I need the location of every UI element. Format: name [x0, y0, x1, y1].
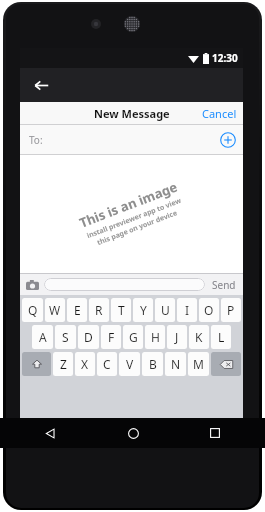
staticText: C: [103, 356, 111, 372]
button[interactable]: Z: [53, 352, 73, 376]
button[interactable]: K: [189, 325, 209, 349]
staticText: S: [62, 329, 69, 345]
button[interactable]: S: [55, 325, 76, 349]
staticText: V: [126, 356, 134, 372]
button[interactable]: Back: [28, 72, 54, 98]
staticText: I: [185, 302, 190, 318]
button[interactable]: Camera: [25, 277, 40, 292]
button[interactable]: Back: [38, 421, 62, 445]
button[interactable]: N: [165, 352, 186, 376]
button[interactable]: Backspace: [211, 352, 241, 376]
button[interactable]: O: [199, 298, 219, 322]
staticText: D: [84, 329, 93, 345]
staticText: M: [193, 356, 204, 372]
staticText: T: [118, 302, 125, 318]
button[interactable]: C: [97, 352, 117, 376]
staticText: G: [129, 329, 138, 345]
button[interactable]: G: [123, 325, 143, 349]
staticText: Send: [212, 278, 236, 292]
staticText: To:: [29, 133, 43, 147]
button[interactable]: R: [89, 298, 109, 322]
staticText: this page on your device: [95, 208, 179, 248]
staticText: L: [218, 329, 225, 345]
staticText: Q: [28, 302, 38, 318]
staticText: O: [204, 302, 214, 318]
button[interactable]: P: [221, 298, 241, 322]
button[interactable]: Shift: [22, 352, 51, 376]
button[interactable]: To:: [20, 125, 243, 154]
button[interactable]: D: [78, 325, 99, 349]
staticText: R: [95, 302, 103, 318]
button[interactable]: B: [142, 352, 163, 376]
staticText: B: [149, 356, 157, 372]
staticText: U: [161, 302, 170, 318]
staticText: A: [39, 329, 47, 345]
button[interactable]: Cancel: [196, 103, 243, 124]
button[interactable]: Q: [22, 298, 43, 322]
staticText: E: [74, 302, 81, 318]
button[interactable]: J: [167, 325, 187, 349]
staticText: F: [108, 329, 115, 345]
button[interactable]: L: [211, 325, 231, 349]
button[interactable]: H: [145, 325, 165, 349]
staticText: This is an image: [76, 178, 180, 232]
button[interactable]: W: [45, 298, 65, 322]
staticText: P: [227, 302, 235, 318]
staticText: K: [195, 329, 203, 345]
staticText: Cancel: [202, 106, 237, 121]
button[interactable]: M: [188, 352, 209, 376]
button[interactable]: X: [75, 352, 95, 376]
button[interactable]: V: [119, 352, 140, 376]
staticText: Y: [140, 302, 147, 318]
button[interactable]: [44, 278, 205, 291]
button[interactable]: E: [67, 298, 87, 322]
staticText: New Message: [94, 106, 170, 121]
button[interactable]: Send: [210, 278, 238, 292]
button[interactable]: Y: [133, 298, 153, 322]
button[interactable]: Recent apps: [203, 421, 227, 445]
staticText: X: [81, 356, 89, 372]
staticText: J: [175, 329, 179, 345]
button[interactable]: Add contact: [220, 132, 236, 148]
staticText: 12:30: [212, 51, 238, 65]
staticText: N: [171, 356, 181, 372]
staticText: W: [49, 302, 61, 318]
button[interactable]: T: [111, 298, 131, 322]
staticText: install previewer app to view: [85, 196, 183, 241]
staticText: H: [151, 329, 160, 345]
button[interactable]: Home: [121, 421, 145, 445]
staticText: Z: [60, 356, 67, 372]
button[interactable]: A: [32, 325, 53, 349]
button[interactable]: F: [101, 325, 121, 349]
button[interactable]: I: [177, 298, 197, 322]
button[interactable]: U: [155, 298, 175, 322]
